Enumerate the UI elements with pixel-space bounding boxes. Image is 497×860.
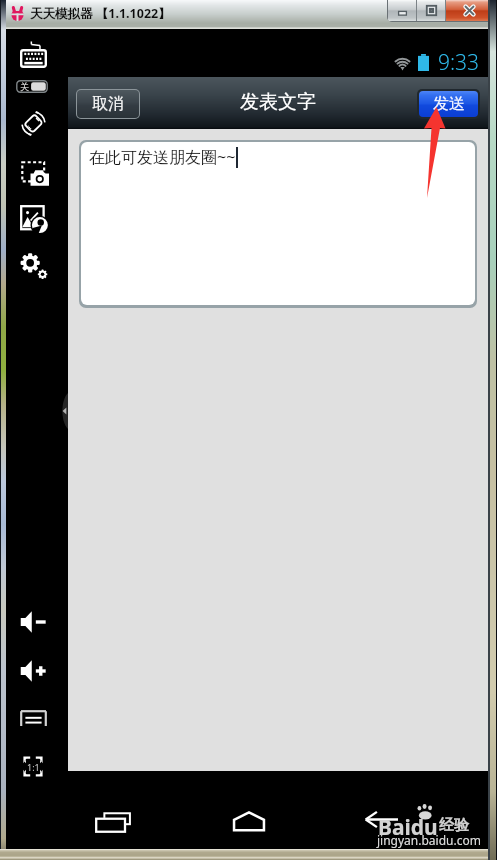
button[interactable]: Settings <box>19 250 50 282</box>
button[interactable]: Keyboard <box>20 42 47 69</box>
staticText: 1:1 <box>27 761 40 773</box>
button[interactable]: Rotate screen <box>21 111 46 136</box>
staticText: 关 <box>20 81 29 92</box>
staticText: 经验 <box>439 816 469 835</box>
button[interactable]: Volume up <box>19 657 48 685</box>
button[interactable]: Menu <box>20 710 47 727</box>
button[interactable]: Actual size <box>23 756 43 777</box>
button[interactable]: Maximize <box>417 0 445 21</box>
button[interactable]: 发送 <box>419 91 478 117</box>
staticText: 发送 <box>433 94 465 114</box>
button[interactable]: Shared album <box>20 203 48 235</box>
button[interactable]: Recent apps <box>95 812 131 833</box>
button[interactable]: 在此可发送朋友圈~~ <box>81 142 475 305</box>
button[interactable]: Screenshot <box>21 155 49 188</box>
staticText: 取消 <box>92 94 124 114</box>
button[interactable]: Collapse toolbar <box>58 393 68 429</box>
staticText: 天天模拟器 【1.1.1022】 <box>30 5 171 22</box>
staticText: 在此可发送朋友圈~~ <box>89 146 236 168</box>
button[interactable]: Home <box>232 811 266 832</box>
button[interactable]: 取消 <box>77 90 139 118</box>
staticText: Baidu <box>378 813 438 842</box>
button[interactable]: Volume down <box>19 608 48 636</box>
staticText: 发表文字 <box>240 90 316 114</box>
staticText: jingyan.baidu.com <box>377 832 481 848</box>
button[interactable]: Close <box>446 0 492 21</box>
staticText: 9:33 <box>438 48 480 77</box>
button[interactable]: Keyboard input toggle <box>16 80 48 93</box>
button[interactable]: Back <box>364 811 398 828</box>
button[interactable]: Minimize <box>388 0 416 21</box>
